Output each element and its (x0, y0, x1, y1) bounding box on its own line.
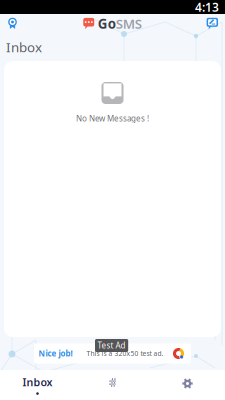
staticText: Nice job! (38, 348, 72, 359)
button[interactable]: Rewards (0, 14, 40, 33)
staticText: SMS (116, 15, 142, 32)
staticText: 4:13 (195, 0, 219, 15)
staticText: No New Messages ! (76, 113, 149, 124)
staticText: Go (98, 15, 116, 32)
staticText: Test Ad (98, 340, 126, 351)
staticText: Inbox (22, 375, 52, 389)
button[interactable]: Settings (150, 370, 225, 400)
button[interactable]: Tags (75, 370, 150, 400)
staticText: This is a 320x50 test ad. (86, 349, 163, 358)
button[interactable]: New message (185, 14, 225, 33)
staticText: Inbox (6, 38, 42, 56)
button[interactable]: Inbox (0, 370, 75, 400)
